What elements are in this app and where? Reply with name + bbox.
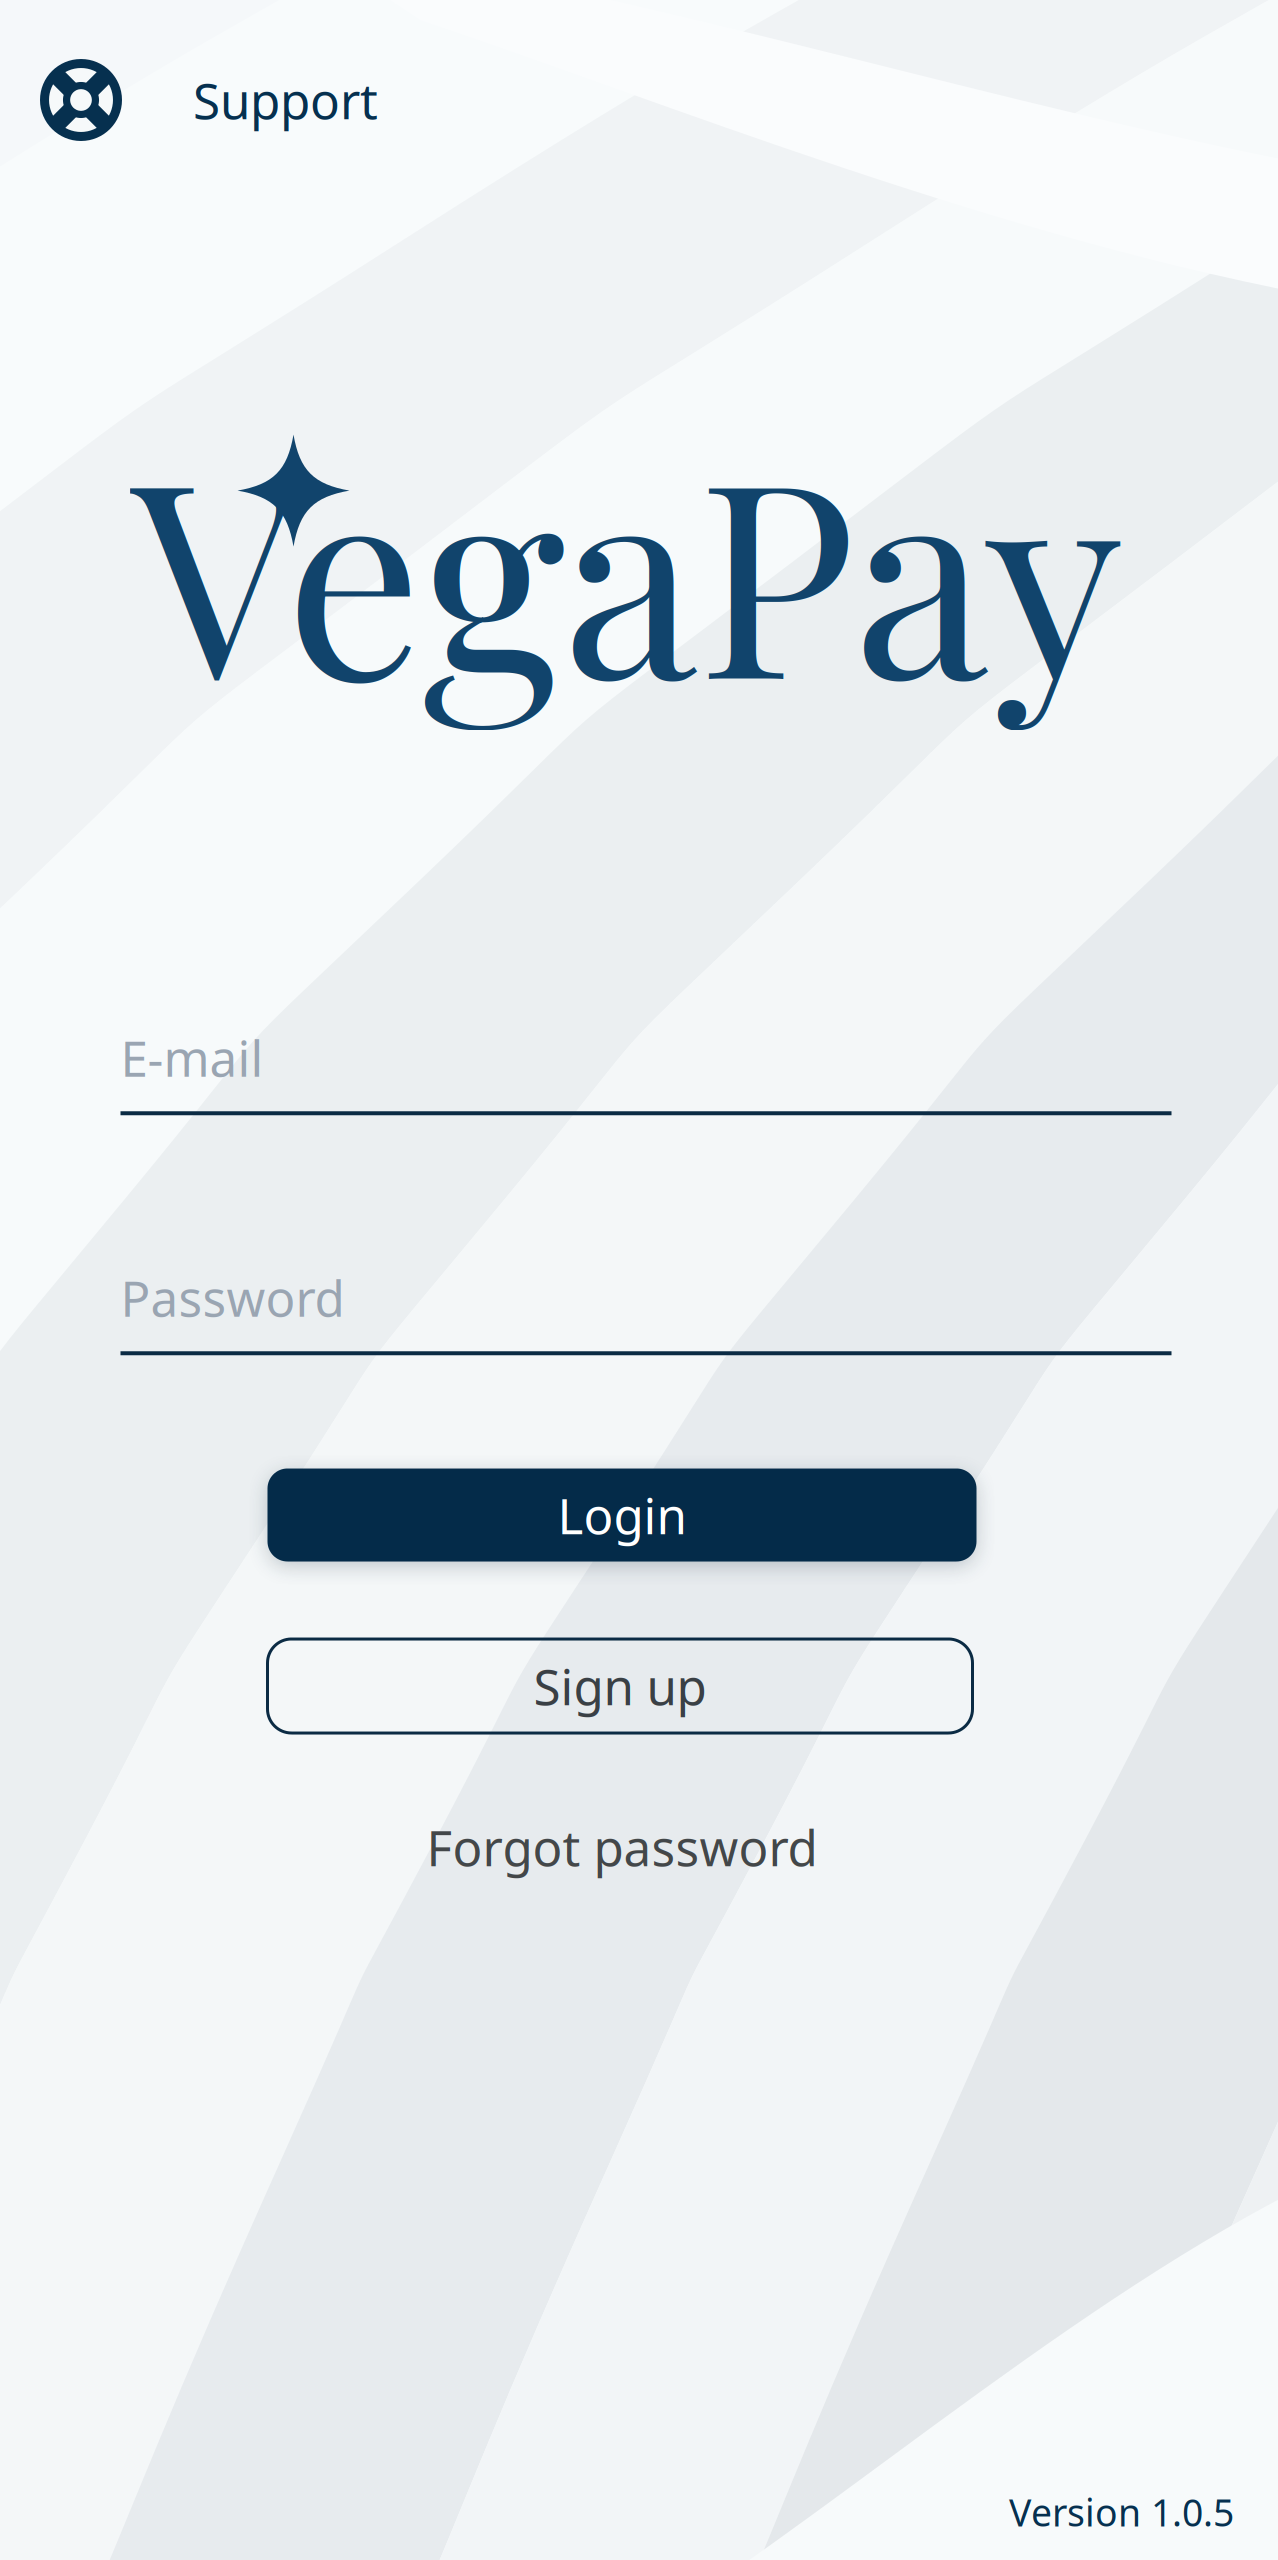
staticText: Version 1.0.5 <box>1009 2487 1234 2537</box>
staticText: Sign up <box>533 1653 706 1719</box>
staticText: Login <box>557 1482 686 1548</box>
staticText: Password <box>120 1265 344 1330</box>
staticText: Forgot password <box>426 1814 817 1880</box>
button[interactable]: Support <box>0 37 408 163</box>
button[interactable]: Sign up <box>267 1639 972 1733</box>
staticText: VegaPay <box>131 387 1122 747</box>
staticText: Support <box>193 67 378 133</box>
staticText: E-mail <box>120 1025 263 1090</box>
button[interactable]: Forgot password <box>396 1798 847 1896</box>
button[interactable]: Login <box>267 1468 976 1561</box>
